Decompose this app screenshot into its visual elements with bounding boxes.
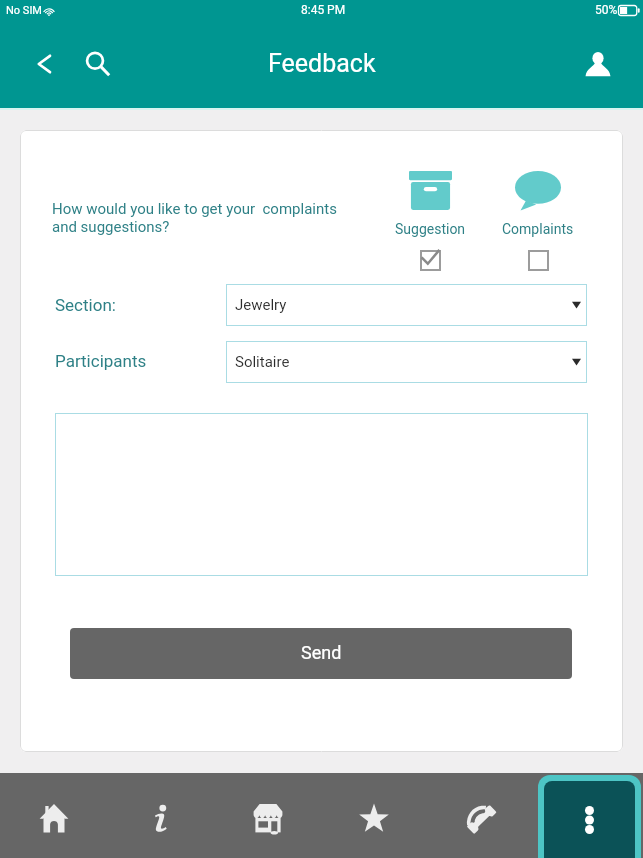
staticText: Participants [55, 351, 147, 371]
button[interactable] [55, 413, 588, 576]
button[interactable]: Profile [578, 44, 618, 84]
button[interactable]: Suggestion [386, 166, 474, 274]
button[interactable]: Jewelry [226, 284, 587, 326]
button[interactable]: Store [228, 773, 308, 858]
button[interactable]: Send [70, 628, 572, 679]
staticText: Section: [55, 295, 116, 315]
staticText: Solitaire [235, 353, 290, 371]
button[interactable]: Favorites [334, 773, 414, 858]
button[interactable]: Solitaire [226, 341, 587, 383]
staticText: Complaints [502, 221, 574, 237]
button[interactable]: Search [77, 43, 118, 84]
staticText: 8:45 PM [301, 3, 346, 17]
button[interactable]: Back [25, 45, 63, 83]
staticText: How would you like to get your complaint… [52, 200, 337, 236]
button[interactable]: Complaints [494, 166, 582, 274]
staticText: 50% [595, 3, 618, 17]
staticText: Jewelry [235, 296, 287, 314]
staticText: Feedback [268, 49, 376, 78]
button[interactable]: More options [544, 781, 635, 858]
staticText: Send [301, 642, 342, 663]
button[interactable]: Call [441, 773, 521, 858]
button[interactable]: Information [121, 773, 201, 858]
button[interactable]: Home [14, 773, 94, 858]
staticText: Suggestion [395, 221, 466, 237]
staticText: No SIM [6, 4, 42, 17]
